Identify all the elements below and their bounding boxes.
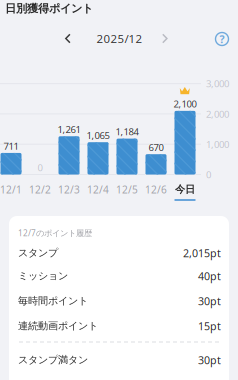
- button[interactable]: スタンプ満タン: [9, 349, 229, 371]
- button[interactable]: ミッション: [9, 265, 229, 287]
- staticText: 0: [206, 168, 211, 181]
- staticText: スタンプ: [18, 247, 58, 259]
- staticText: 2,100: [173, 97, 196, 110]
- staticText: 12/7のポイント履歴: [18, 227, 92, 239]
- staticText: 40pt: [198, 269, 221, 283]
- staticText: 2,000: [206, 107, 229, 120]
- button[interactable]: 次の月: [152, 25, 178, 51]
- staticText: 711: [3, 139, 18, 152]
- staticText: スタンプ満タン: [18, 354, 88, 366]
- staticText: 12/5: [116, 183, 138, 196]
- button[interactable]: 連続動画ポイント: [9, 315, 229, 337]
- staticText: 1,184: [115, 125, 138, 138]
- staticText: 3,000: [206, 77, 229, 90]
- button[interactable]: スタンプ: [9, 242, 229, 264]
- staticText: 日別獲得ポイント: [5, 1, 93, 15]
- staticText: 12/3: [58, 183, 80, 196]
- staticText: 30pt: [198, 353, 221, 367]
- staticText: 2025/12: [96, 31, 142, 46]
- staticText: 30pt: [198, 294, 221, 308]
- staticText: 1,000: [206, 138, 229, 151]
- staticText: 毎時間ポイント: [18, 295, 88, 307]
- staticText: 12/4: [87, 183, 109, 196]
- button[interactable]: ヘルプ: [210, 27, 234, 51]
- staticText: 1,065: [86, 129, 109, 142]
- staticText: 12/6: [145, 183, 167, 196]
- staticText: 0: [37, 161, 42, 174]
- staticText: 12/2: [29, 183, 51, 196]
- staticText: 15pt: [198, 319, 221, 333]
- staticText: 連続動画ポイント: [18, 320, 98, 332]
- staticText: 12/1: [0, 183, 22, 196]
- staticText: 1,261: [57, 123, 80, 136]
- staticText: 今日: [175, 183, 195, 196]
- staticText: ?: [219, 32, 224, 46]
- staticText: ミッション: [18, 270, 68, 282]
- button[interactable]: 前の月: [55, 25, 81, 51]
- staticText: 670: [148, 141, 163, 154]
- staticText: 2,015pt: [183, 246, 221, 260]
- button[interactable]: 毎時間ポイント: [9, 290, 229, 312]
